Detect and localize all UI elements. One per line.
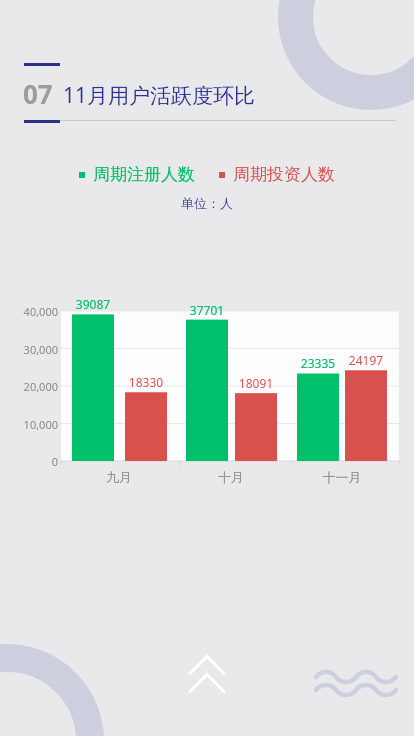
staticText: 18330	[116, 374, 176, 390]
staticText: 单位：人	[181, 195, 233, 211]
staticText: 九月	[84, 469, 154, 485]
staticText: 30,000	[0, 342, 58, 357]
staticText: 11月用户活跃度环比	[63, 81, 256, 110]
staticText: 39087	[63, 296, 123, 312]
other: Monthly activity bar chart	[0, 0, 414, 736]
staticText: 10,000	[0, 417, 58, 432]
staticText: 周期注册人数	[93, 164, 195, 185]
button[interactable]: 周期投资人数	[217, 162, 337, 187]
staticText: 18091	[226, 375, 286, 391]
staticText: 十月	[196, 469, 266, 485]
staticText: 37701	[177, 302, 237, 318]
button[interactable]: 07	[23, 76, 256, 111]
staticText: 40,000	[0, 304, 58, 319]
staticText: 24197	[336, 352, 396, 368]
staticText: 十一月	[307, 469, 377, 485]
staticText: 23335	[288, 355, 348, 371]
staticText: 周期投资人数	[233, 164, 335, 185]
button[interactable]: 周期注册人数	[77, 162, 197, 187]
staticText: 0	[0, 454, 58, 469]
staticText: 20,000	[0, 379, 58, 394]
staticText: 07	[23, 76, 53, 111]
